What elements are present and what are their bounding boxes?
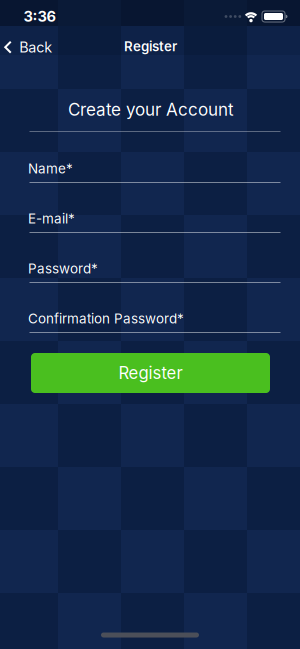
- staticText: Register: [124, 38, 177, 54]
- button[interactable]: Back: [4, 38, 52, 56]
- staticText: E-mail*: [28, 210, 75, 227]
- staticText: Register: [118, 363, 182, 383]
- staticText: Confirmation Password*: [28, 310, 184, 327]
- button[interactable]: Register: [31, 353, 270, 393]
- staticText: Password*: [28, 260, 98, 277]
- staticText: Back: [19, 38, 52, 56]
- staticText: 3:36: [23, 8, 56, 25]
- staticText: Create your Account: [68, 99, 234, 120]
- staticText: Name*: [28, 160, 73, 177]
